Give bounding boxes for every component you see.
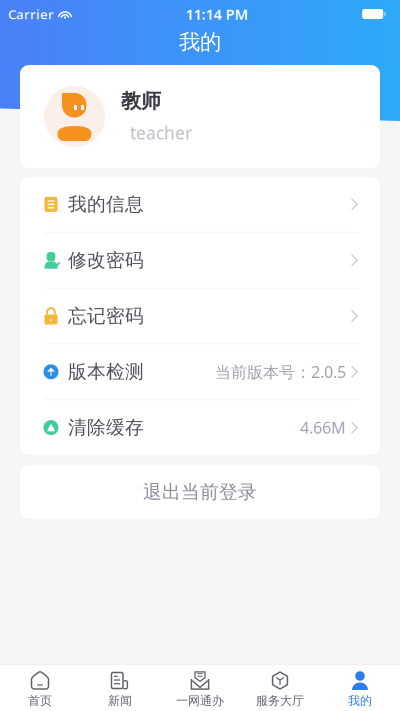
button[interactable]: 退出当前登录 (20, 465, 380, 519)
staticText: 修改密码 (68, 249, 144, 272)
button[interactable]: 我的 (320, 664, 400, 711)
button[interactable]: 版本检测 (20, 344, 380, 399)
button[interactable]: 首页 (0, 664, 80, 711)
staticText: 当前版本号：2.0.5 (215, 361, 346, 382)
button[interactable]: 清除缓存 (20, 400, 380, 455)
button[interactable]: 一网通办 (160, 664, 240, 711)
staticText: teacher (130, 121, 192, 144)
staticText: 我的 (179, 29, 221, 55)
staticText: 首页 (28, 693, 52, 708)
staticText: 11:14 PM (185, 4, 248, 24)
button[interactable]: 新闻 (80, 664, 160, 711)
button[interactable]: 修改密码 (20, 233, 380, 288)
staticText: 教师 (121, 89, 161, 113)
staticText: 服务大厅 (256, 693, 304, 708)
button[interactable]: 忘记密码 (20, 289, 380, 343)
staticText: 版本检测 (68, 360, 144, 383)
staticText: 忘记密码 (68, 304, 144, 327)
staticText: 我的 (348, 693, 372, 708)
staticText: Carrier (8, 5, 54, 23)
button[interactable]: 教师 (20, 65, 380, 168)
button[interactable]: 服务大厅 (240, 664, 320, 711)
staticText: 4.66M (300, 417, 346, 438)
staticText: 退出当前登录 (143, 480, 257, 503)
staticText: 清除缓存 (68, 416, 144, 439)
button[interactable]: 我的信息 (20, 177, 380, 232)
staticText: 我的信息 (68, 193, 144, 216)
staticText: 新闻 (108, 693, 132, 708)
staticText: 一网通办 (176, 693, 224, 708)
